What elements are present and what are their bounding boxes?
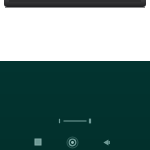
button[interactable]: Recent apps bbox=[30, 134, 46, 150]
button[interactable]: Adjust bbox=[58, 117, 92, 125]
button[interactable]: Home bbox=[64, 134, 80, 150]
button[interactable]: Back bbox=[98, 134, 114, 150]
